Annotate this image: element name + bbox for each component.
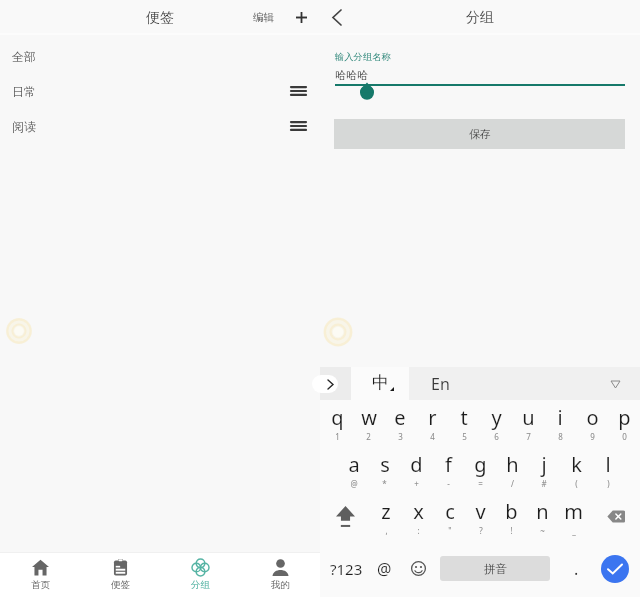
button[interactable]: u <box>512 400 544 446</box>
staticText: . <box>574 558 579 580</box>
staticText: s <box>380 451 390 478</box>
button[interactable]: 我的 <box>240 553 320 597</box>
staticText: 拼音 <box>484 562 507 576</box>
staticText: k <box>571 451 582 478</box>
button[interactable]: i <box>544 400 576 446</box>
staticText: 我的 <box>271 579 290 591</box>
staticText: h <box>506 451 519 478</box>
button[interactable]: Back <box>323 3 351 31</box>
staticText: m <box>564 498 583 525</box>
button[interactable]: Expand toolbar <box>312 375 338 393</box>
staticText: z <box>381 498 391 525</box>
button[interactable]: a <box>338 446 369 493</box>
button[interactable]: 全部 <box>0 39 320 74</box>
button[interactable]: Hide keyboard <box>604 373 626 395</box>
button[interactable]: p <box>608 400 640 446</box>
button[interactable]: 便签 <box>80 553 160 597</box>
staticText: w <box>361 404 377 431</box>
staticText: - <box>447 478 450 489</box>
button[interactable]: ?123 <box>320 540 372 597</box>
staticText: y <box>491 404 502 431</box>
staticText: En <box>431 373 450 395</box>
button[interactable]: f <box>432 446 464 493</box>
staticText: 输入分组名称 <box>335 51 391 63</box>
staticText: l <box>605 451 611 478</box>
staticText: , <box>385 525 388 536</box>
button[interactable]: 阅读 <box>0 109 320 144</box>
button[interactable]: g <box>464 446 496 493</box>
button[interactable]: r <box>416 400 448 446</box>
button[interactable]: 分组 <box>160 553 240 597</box>
staticText: @ <box>350 478 358 489</box>
button[interactable]: v <box>465 493 496 540</box>
button[interactable]: . <box>550 540 602 597</box>
button[interactable]: h <box>496 446 528 493</box>
button[interactable]: c <box>434 493 465 540</box>
staticText: r <box>428 404 437 431</box>
staticText: ? <box>479 525 483 536</box>
staticText: a <box>348 451 360 478</box>
button[interactable]: w <box>353 400 384 446</box>
button[interactable]: k <box>560 446 592 493</box>
staticText: 哈哈哈 <box>335 68 368 82</box>
staticText: 7 <box>526 431 531 442</box>
button[interactable]: @ <box>372 540 397 597</box>
button[interactable]: b <box>496 493 527 540</box>
staticText: v <box>475 498 486 525</box>
button[interactable]: j <box>528 446 560 493</box>
staticText: 便签 <box>146 9 174 27</box>
staticText: ( <box>575 478 578 489</box>
button[interactable]: e <box>384 400 416 446</box>
button[interactable]: 日常 <box>0 74 320 109</box>
staticText: 便签 <box>111 579 130 591</box>
staticText: 3 <box>398 431 403 442</box>
button[interactable]: 拼音 <box>440 556 550 581</box>
staticText: q <box>331 404 344 431</box>
staticText: 0 <box>622 431 627 442</box>
button[interactable]: n <box>527 493 558 540</box>
staticText: u <box>522 404 535 431</box>
button[interactable]: 编辑 <box>250 4 277 30</box>
button[interactable]: t <box>448 400 480 446</box>
button[interactable]: s <box>369 446 400 493</box>
staticText: e <box>394 404 406 431</box>
staticText: 分组 <box>191 579 210 591</box>
button[interactable]: 中 <box>351 367 409 400</box>
staticText: # <box>541 478 547 489</box>
staticText: t <box>460 404 468 431</box>
staticText: b <box>505 498 518 525</box>
staticText: ! <box>510 525 513 536</box>
staticText: ~ <box>540 525 545 536</box>
button[interactable]: Confirm <box>602 540 640 597</box>
staticText: = <box>478 478 483 489</box>
staticText: 分组 <box>466 9 494 27</box>
button[interactable]: 首页 <box>0 553 80 597</box>
button[interactable]: Backspace <box>591 493 640 540</box>
button[interactable]: z <box>370 493 402 540</box>
staticText: _ <box>572 525 576 536</box>
staticText: / <box>511 478 514 489</box>
button[interactable]: d <box>400 446 432 493</box>
staticText: ?123 <box>330 559 363 579</box>
button[interactable]: En <box>409 367 640 400</box>
button[interactable]: Emoji <box>397 540 440 597</box>
button[interactable]: l <box>592 446 624 493</box>
button[interactable]: q <box>322 400 353 446</box>
other: Reorder <box>287 80 309 102</box>
staticText: c <box>445 498 455 525</box>
button[interactable]: Shift <box>320 493 370 540</box>
button[interactable]: Add group <box>287 3 315 31</box>
staticText: 首页 <box>31 579 50 591</box>
button[interactable]: x <box>402 493 434 540</box>
button[interactable]: o <box>576 400 608 446</box>
staticText: 6 <box>494 431 499 442</box>
button[interactable]: m <box>558 493 589 540</box>
staticText: 编辑 <box>253 11 274 24</box>
button[interactable]: y <box>480 400 512 446</box>
staticText: f <box>445 451 452 478</box>
staticText: 4 <box>430 431 435 442</box>
staticText: p <box>618 404 631 431</box>
staticText: 9 <box>590 431 595 442</box>
staticText: : <box>417 525 420 536</box>
button[interactable]: 保存 <box>334 119 625 149</box>
